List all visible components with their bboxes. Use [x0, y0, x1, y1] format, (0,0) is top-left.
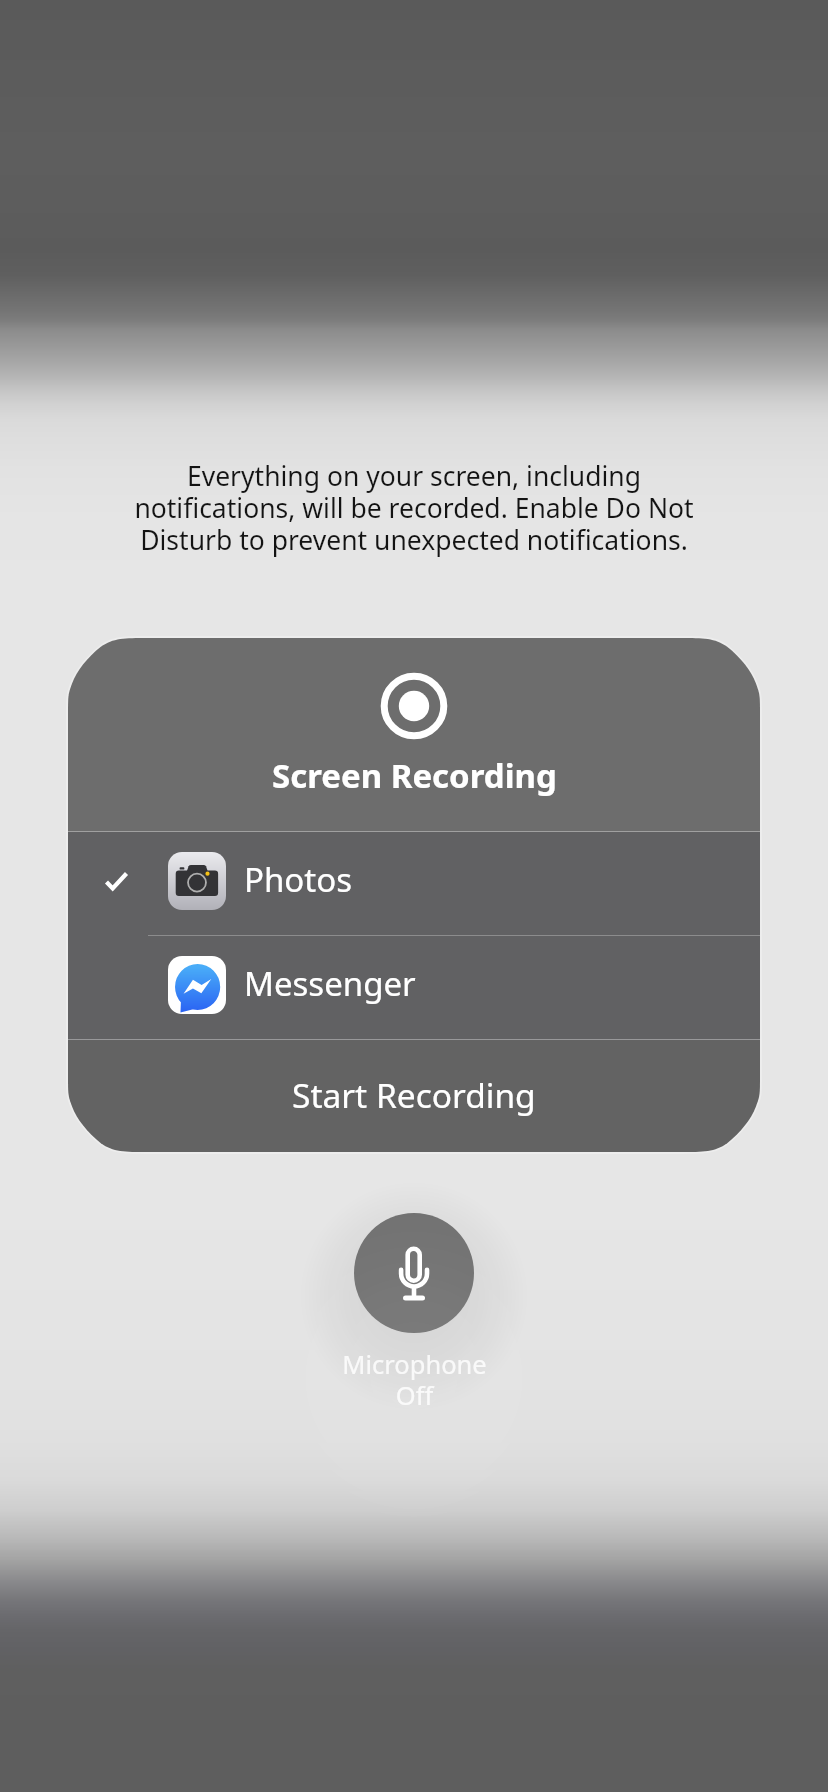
button[interactable]: Start Recording [68, 1040, 760, 1152]
staticText: Microphone Off [342, 1347, 487, 1412]
staticText: Photos [244, 857, 353, 902]
staticText: Messenger [244, 961, 416, 1006]
button[interactable]: Messenger [68, 936, 760, 1040]
staticText: Start Recording [292, 1072, 536, 1118]
staticText: Everything on your screen, including not… [64, 458, 764, 558]
staticText: Screen Recording [272, 753, 557, 798]
button[interactable]: Microphone Off [354, 1213, 474, 1333]
button[interactable]: Photos [68, 832, 760, 936]
